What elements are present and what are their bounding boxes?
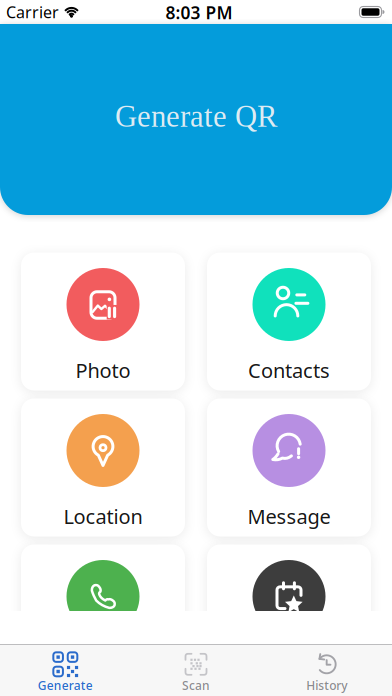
button[interactable]: Generate: [0, 645, 131, 693]
staticText: 8:03 PM: [165, 1, 232, 24]
staticText: Contacts: [248, 357, 330, 383]
button[interactable]: Phone: [21, 544, 185, 682]
button[interactable]: Contacts: [207, 252, 371, 390]
staticText: History: [306, 677, 347, 693]
staticText: Location: [63, 503, 142, 529]
staticText: Events: [258, 649, 319, 675]
button[interactable]: History: [261, 645, 392, 693]
button[interactable]: Message: [207, 398, 371, 536]
staticText: Carrier: [6, 1, 59, 23]
staticText: Message: [247, 503, 330, 529]
button[interactable]: Photo: [21, 252, 185, 390]
staticText: Generate QR: [115, 99, 277, 133]
staticText: Scan: [182, 677, 210, 693]
button[interactable]: Scan: [131, 645, 261, 693]
staticText: Phone: [73, 649, 132, 675]
staticText: Generate: [38, 677, 93, 693]
button[interactable]: Location: [21, 398, 185, 536]
button[interactable]: Events: [207, 544, 371, 682]
staticText: Photo: [75, 357, 130, 383]
